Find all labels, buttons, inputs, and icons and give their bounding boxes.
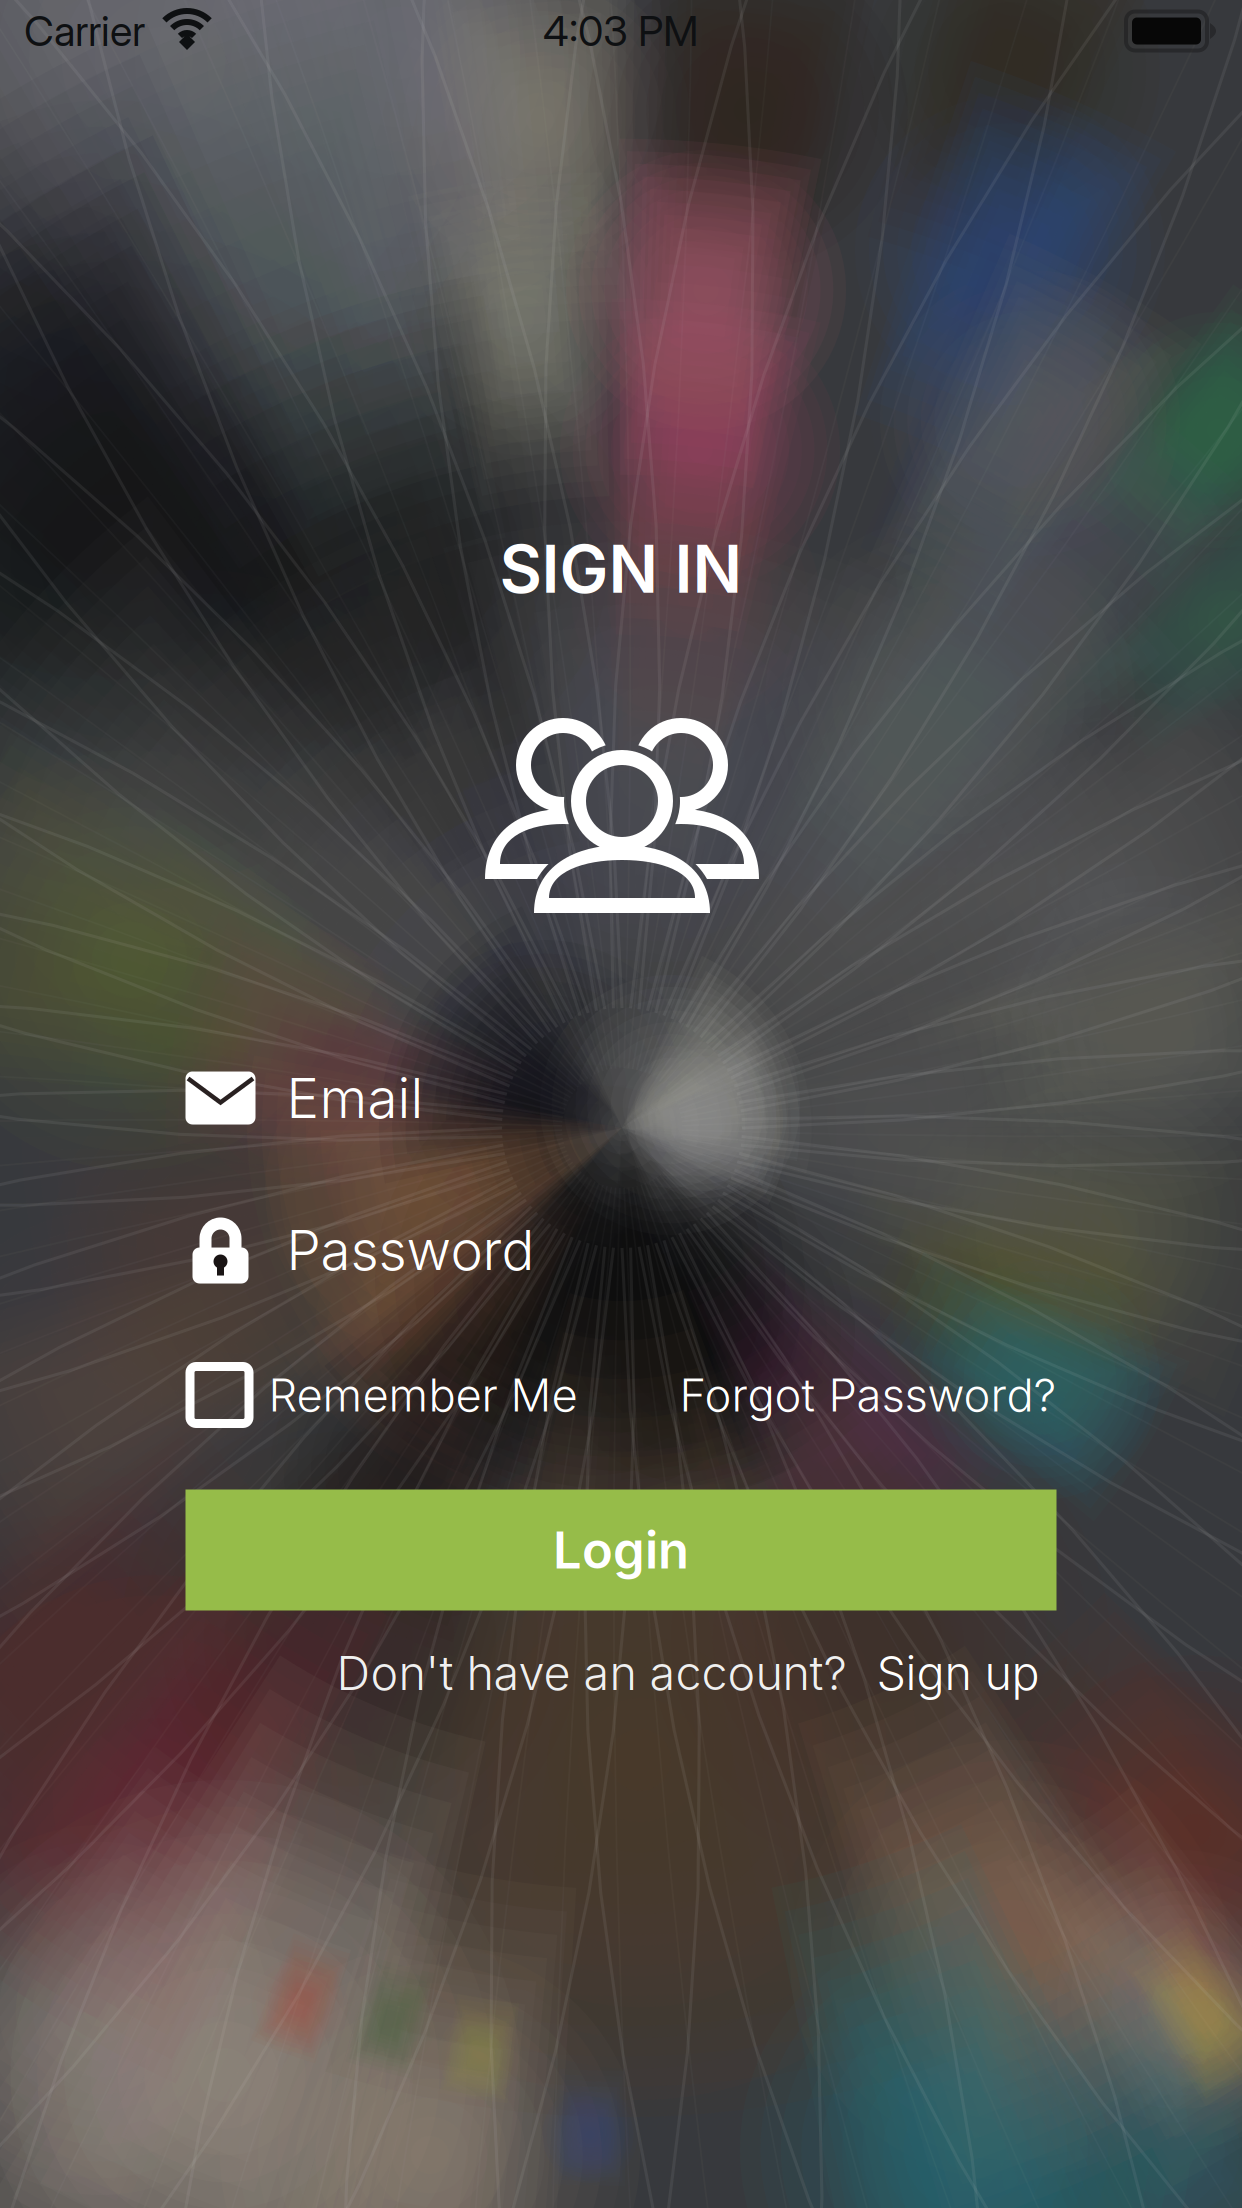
staticText: SIGN IN xyxy=(499,529,742,608)
staticText: Email xyxy=(286,1065,423,1131)
button[interactable]: Login xyxy=(185,1489,1056,1610)
staticText: Login xyxy=(553,1519,689,1581)
button[interactable]: Email xyxy=(185,1055,1056,1141)
staticText: Password xyxy=(286,1217,534,1283)
staticText: Forgot Password? xyxy=(679,1368,1056,1422)
staticText: Carrier xyxy=(24,6,145,56)
staticText: Remember Me xyxy=(268,1368,577,1422)
staticText: 4:03 PM xyxy=(543,6,699,56)
button[interactable]: Remember Me xyxy=(185,1362,577,1428)
button[interactable]: Password xyxy=(185,1207,1056,1293)
staticText: Sign up xyxy=(876,1645,1039,1701)
button[interactable]: Sign up xyxy=(876,1645,1039,1701)
button[interactable]: Forgot Password? xyxy=(679,1368,1056,1422)
staticText: Don't have an account? xyxy=(336,1645,846,1701)
